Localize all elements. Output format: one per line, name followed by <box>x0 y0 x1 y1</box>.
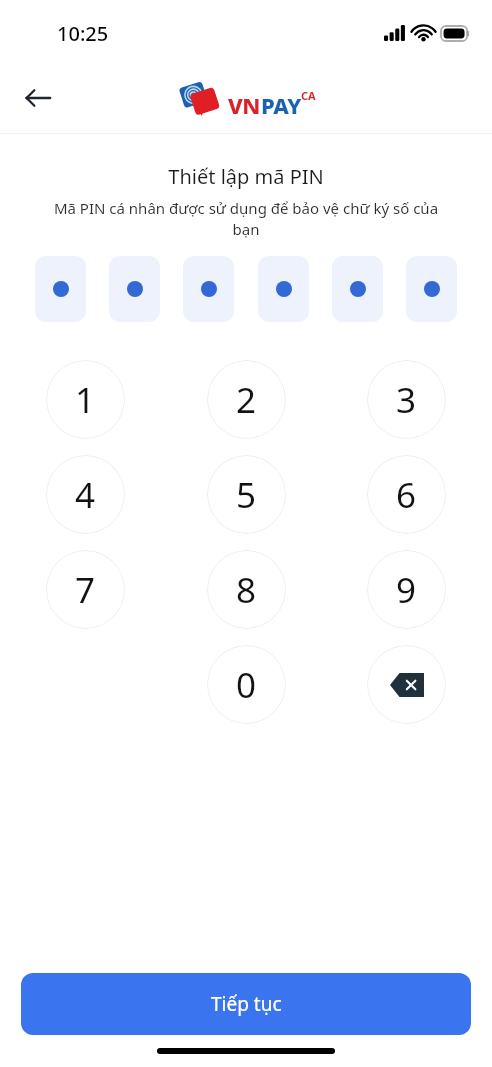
staticText: 10:25 <box>57 20 109 47</box>
staticText: Thiết lập mã PIN <box>168 163 324 190</box>
button[interactable]: 9 <box>367 550 446 629</box>
button[interactable]: 4 <box>46 455 125 534</box>
button[interactable]: 7 <box>46 550 125 629</box>
staticText: VN <box>228 90 261 120</box>
button[interactable]: 5 <box>207 455 286 534</box>
button[interactable]: 8 <box>207 550 286 629</box>
staticText: 0 <box>236 661 257 709</box>
staticText: Tiếp tục <box>211 991 282 1017</box>
staticText: 8 <box>236 566 257 614</box>
staticText: 1 <box>75 376 96 424</box>
button[interactable]: Back <box>12 72 64 124</box>
staticText: 3 <box>396 376 417 424</box>
staticText: 2 <box>236 376 257 424</box>
staticText: PAY <box>261 90 301 120</box>
staticText: 4 <box>75 471 96 519</box>
button[interactable]: 6 <box>367 455 446 534</box>
staticText: 9 <box>396 566 417 614</box>
button[interactable]: 2 <box>207 360 286 439</box>
staticText: Mã PIN cá nhân được sử dụng để bảo vệ ch… <box>40 198 452 240</box>
button[interactable]: 3 <box>367 360 446 439</box>
button[interactable]: Delete <box>367 645 446 724</box>
staticText: CA <box>301 88 316 103</box>
staticText: 5 <box>236 471 257 519</box>
button[interactable]: 0 <box>207 645 286 724</box>
staticText: 6 <box>396 471 417 519</box>
staticText: 7 <box>75 566 96 614</box>
button[interactable]: 1 <box>46 360 125 439</box>
button[interactable]: Tiếp tục <box>21 973 471 1035</box>
